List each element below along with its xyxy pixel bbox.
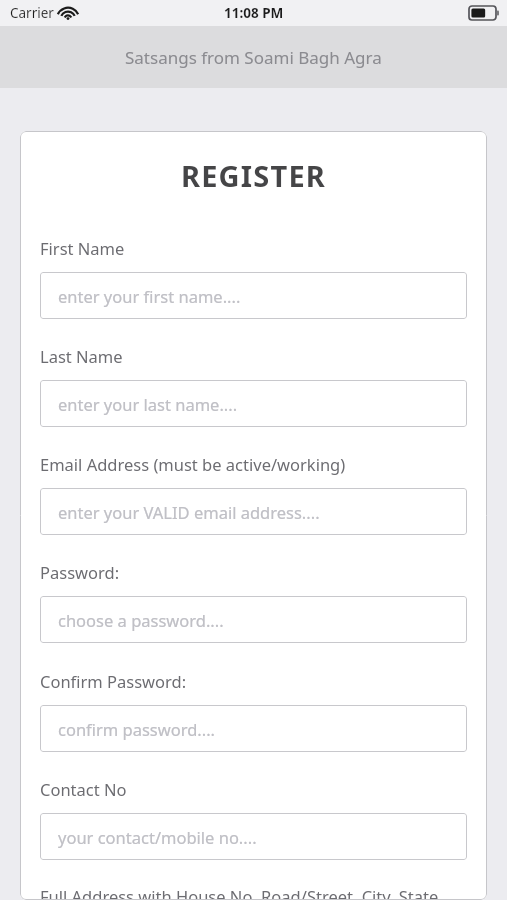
staticText: Carrier <box>10 4 54 22</box>
button[interactable]: enter your VALID email address.... <box>40 488 467 535</box>
staticText: REGISTER <box>40 156 467 195</box>
staticText: Contact No <box>40 778 127 800</box>
staticText: enter your VALID email address.... <box>58 501 320 523</box>
button[interactable]: choose a password.... <box>40 596 467 643</box>
staticText: confirm password.... <box>58 718 216 740</box>
button[interactable]: enter your first name.... <box>40 272 467 319</box>
staticText: Password: <box>40 561 120 583</box>
staticText: First Name <box>40 237 125 259</box>
staticText: choose a password.... <box>58 609 224 631</box>
other: Battery <box>469 6 499 20</box>
button[interactable]: enter your last name.... <box>40 380 467 427</box>
staticText: Last Name <box>40 345 123 367</box>
button[interactable]: your contact/mobile no.... <box>40 813 467 860</box>
staticText: Satsangs from Soami Bagh Agra <box>125 46 382 69</box>
staticText: Confirm Password: <box>40 670 187 692</box>
staticText: Full Address with House No. Road/Street,… <box>40 885 467 900</box>
other: Wi-Fi signal <box>60 7 76 20</box>
staticText: enter your last name.... <box>58 393 238 415</box>
button[interactable]: confirm password.... <box>40 705 467 752</box>
staticText: Email Address (must be active/working) <box>40 453 346 475</box>
staticText: your contact/mobile no.... <box>58 826 257 848</box>
staticText: 11:08 PM <box>224 4 284 22</box>
staticText: enter your first name.... <box>58 285 241 307</box>
